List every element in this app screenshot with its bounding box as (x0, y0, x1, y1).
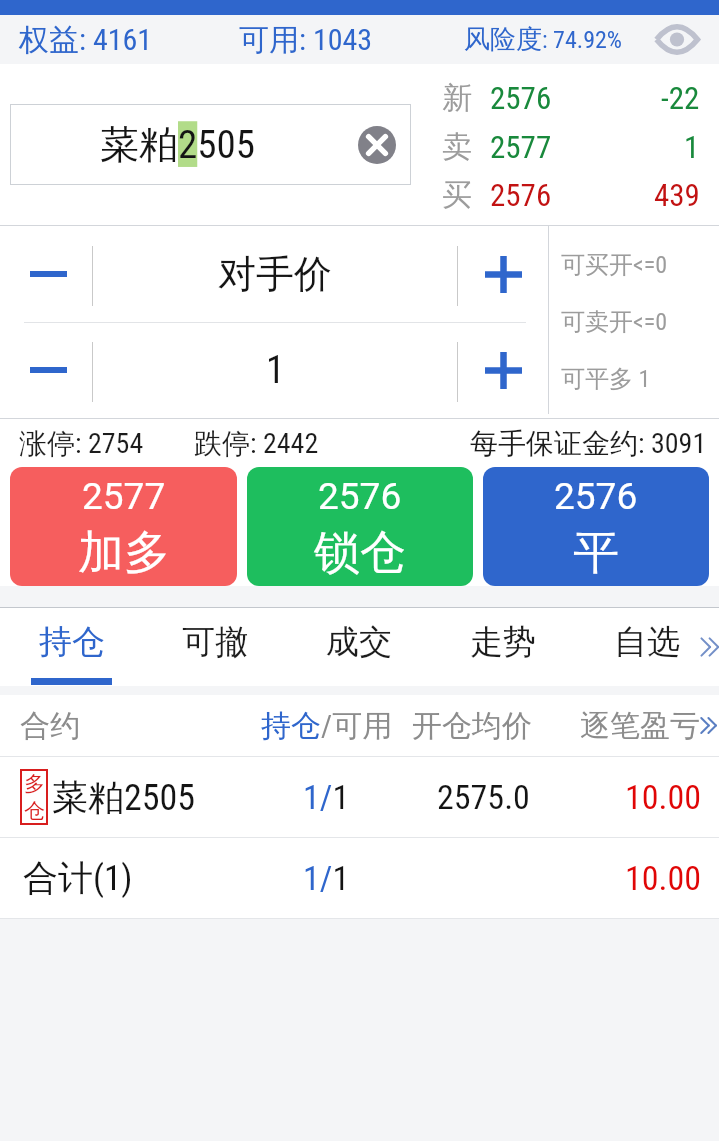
staticText: 可平多 1 (561, 364, 651, 392)
staticText: 2576 (318, 475, 402, 518)
staticText: 自选 (614, 621, 680, 663)
staticText: 持仓/可用 (261, 707, 393, 745)
button[interactable]: 2577 (10, 467, 237, 586)
staticText: 2577 (82, 475, 166, 518)
staticText: 10.00 (625, 858, 702, 898)
staticText: 合约 (20, 707, 80, 745)
button[interactable]: 成交 (287, 608, 431, 686)
staticText: 可用: 1043 (239, 21, 373, 59)
staticText: 多 (24, 771, 45, 797)
staticText: -22 (661, 80, 700, 116)
staticText: 持仓 (39, 621, 105, 663)
button[interactable]: 多 (0, 757, 719, 837)
staticText: 走势 (470, 621, 536, 663)
staticText: 1/1 (303, 858, 350, 898)
staticText: 涨停: 2754 (19, 426, 144, 461)
staticText: 1 (266, 348, 285, 393)
staticText: 1 (684, 129, 700, 165)
staticText: 仓 (24, 798, 45, 824)
staticText: 1/1 (303, 777, 350, 817)
button[interactable]: Increase (458, 226, 548, 322)
staticText: 锁仓 (314, 524, 406, 582)
staticText: 加多 (78, 524, 170, 582)
button[interactable]: Decrease (0, 322, 92, 418)
staticText: 平 (573, 524, 619, 582)
staticText: 可撤 (182, 621, 248, 663)
staticText: 2576 (490, 177, 552, 213)
staticText: 10.00 (625, 777, 702, 817)
staticText: 对手价 (218, 250, 332, 298)
button[interactable]: Clear text (351, 119, 403, 171)
button[interactable]: 2576 (483, 467, 709, 586)
staticText: 2575.0 (437, 777, 530, 817)
staticText: 可卖开<=0 (561, 307, 668, 335)
button[interactable]: 菜粕2505 (10, 104, 411, 185)
button[interactable]: 可撤 (143, 608, 287, 686)
staticText: 逐笔盈亏 (580, 707, 700, 745)
staticText: 风险度: 74.92% (464, 23, 623, 56)
staticText: 开仓均价 (412, 707, 532, 745)
staticText: 2576 (554, 475, 638, 518)
button[interactable]: Decrease (0, 226, 92, 322)
button[interactable]: Increase (458, 322, 548, 418)
staticText: 新 (442, 79, 472, 117)
staticText: 成交 (326, 621, 392, 663)
staticText: 439 (654, 177, 700, 213)
button[interactable]: 自选 (575, 608, 719, 686)
button[interactable]: 走势 (431, 608, 575, 686)
button[interactable]: More tabs (700, 608, 719, 686)
staticText: 菜粕2505 (52, 775, 196, 820)
staticText: 跌停: 2442 (194, 426, 319, 461)
staticText: 2577 (490, 129, 552, 165)
button[interactable]: 持仓 (0, 608, 143, 686)
button[interactable]: Hide balance (647, 15, 707, 64)
staticText: 2576 (490, 80, 552, 116)
staticText: 权益: 4161 (19, 21, 153, 59)
staticText: 菜粕2505 (100, 120, 256, 169)
staticText: 买 (442, 176, 472, 214)
staticText: 每手保证金约: 3091 (470, 426, 707, 461)
button[interactable]: 2576 (247, 467, 473, 586)
staticText: 合计(1) (23, 856, 133, 900)
staticText: 可买开<=0 (561, 250, 668, 278)
staticText: 卖 (442, 128, 472, 166)
